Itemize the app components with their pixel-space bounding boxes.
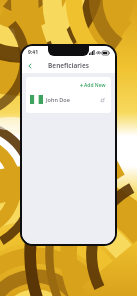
staticText: 9:41 — [28, 49, 38, 56]
button[interactable]: John Doe — [26, 92, 111, 107]
button[interactable]: Back — [24, 60, 36, 72]
staticText: John Doe — [46, 96, 99, 103]
staticText: Add New — [84, 82, 106, 89]
button[interactable]: Edit beneficiary — [99, 96, 107, 104]
staticText: Beneficiaries — [48, 61, 89, 70]
button[interactable]: Add New — [79, 81, 107, 90]
